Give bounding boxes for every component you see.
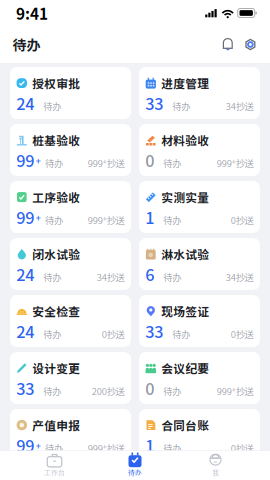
staticText: 24 [16, 262, 34, 286]
staticText: 待办 [172, 327, 190, 341]
staticText: 待办 [163, 270, 181, 284]
staticText: 待办 [45, 213, 63, 227]
staticText: 桩基验收 [32, 132, 80, 149]
staticText: 99 [16, 205, 34, 229]
staticText: 0抄送 [231, 441, 254, 455]
button[interactable]: 材料验收 [139, 124, 260, 176]
button[interactable]: 产值申报 [10, 409, 131, 461]
button[interactable]: 桩基验收 [10, 124, 131, 176]
staticText: 闭水试验 [32, 246, 80, 263]
staticText: 抄送 [107, 213, 125, 227]
staticText: 工序验收 [32, 189, 80, 206]
staticText: 0抄送 [231, 327, 254, 341]
staticText: 进度管理 [161, 75, 209, 92]
button[interactable]: 授权审批 [10, 67, 131, 119]
button[interactable]: 合同台账 [139, 409, 260, 461]
staticText: 99 [16, 433, 34, 457]
staticText: 待办 [163, 156, 181, 170]
staticText: 999 [88, 156, 103, 170]
button[interactable]: 通知 [217, 33, 239, 56]
staticText: 待办 [45, 441, 63, 455]
button[interactable]: 设计变更 [10, 352, 131, 404]
staticText: 合同台账 [161, 417, 209, 434]
button[interactable]: 现场签证 [139, 295, 260, 347]
staticText: 34抄送 [97, 270, 125, 284]
button[interactable]: 安全检查 [10, 295, 131, 347]
staticText: 实测实量 [161, 189, 209, 206]
staticText: 33 [16, 376, 34, 400]
staticText: 抄送 [107, 441, 125, 455]
staticText: 待办 [43, 270, 61, 284]
staticText: 淋水试验 [161, 246, 209, 263]
staticText: 授权审批 [32, 75, 80, 92]
staticText: + [103, 156, 107, 167]
staticText: 33 [145, 319, 163, 343]
staticText: 999 [88, 213, 103, 227]
staticText: 待办 [172, 99, 190, 113]
button[interactable]: 工序验收 [10, 181, 131, 233]
staticText: 99 [16, 148, 34, 172]
staticText: + [103, 441, 107, 452]
staticText: 抄送 [107, 156, 125, 170]
staticText: 待办 [163, 441, 181, 455]
staticText: 34抄送 [226, 270, 254, 284]
staticText: 200抄送 [92, 384, 125, 398]
staticText: 24 [16, 319, 34, 343]
button[interactable]: 我 [188, 449, 242, 480]
staticText: + [232, 156, 236, 167]
button[interactable]: 闭水试验 [10, 238, 131, 290]
button[interactable]: 设置 [239, 34, 262, 55]
staticText: 待办 [43, 327, 61, 341]
staticText: 0 [145, 148, 154, 172]
button[interactable]: 淋水试验 [139, 238, 260, 290]
staticText: 安全检查 [32, 303, 80, 320]
staticText: 抄送 [236, 384, 254, 398]
staticText: 0抄送 [231, 213, 254, 227]
staticText: 抄送 [236, 156, 254, 170]
button[interactable]: 待办 [108, 449, 162, 480]
staticText: 9:41 [16, 2, 48, 24]
staticText: 待办 [43, 384, 61, 398]
staticText: 34抄送 [226, 99, 254, 113]
staticText: 产值申报 [32, 417, 80, 434]
staticText: 待办 [163, 384, 181, 398]
button[interactable]: 会议纪要 [139, 352, 260, 404]
staticText: + [232, 384, 236, 395]
staticText: 1 [145, 433, 154, 457]
staticText: 33 [145, 91, 163, 115]
staticText: 0抄送 [102, 327, 125, 341]
staticText: + [36, 211, 41, 224]
button[interactable]: 进度管理 [139, 67, 260, 119]
staticText: 待办 [45, 156, 63, 170]
staticText: 6 [145, 262, 154, 286]
staticText: 会议纪要 [161, 360, 209, 377]
staticText: 我 [212, 467, 219, 477]
staticText: 材料验收 [161, 132, 209, 149]
staticText: 999 [217, 156, 232, 170]
staticText: + [36, 439, 41, 452]
staticText: 待办 [128, 467, 142, 477]
button[interactable]: 工作台 [27, 449, 81, 480]
button[interactable]: 实测实量 [139, 181, 260, 233]
staticText: 现场签证 [161, 303, 209, 320]
staticText: 1 [145, 205, 154, 229]
staticText: 999 [217, 384, 232, 398]
staticText: 待办 [12, 34, 40, 55]
staticText: 待办 [163, 213, 181, 227]
staticText: 待办 [43, 99, 61, 113]
staticText: 工作台 [44, 467, 65, 477]
staticText: 999 [88, 441, 103, 455]
staticText: 设计变更 [32, 360, 80, 377]
staticText: 0 [145, 376, 154, 400]
staticText: 24 [16, 91, 34, 115]
staticText: + [36, 154, 41, 167]
staticText: + [103, 213, 107, 224]
